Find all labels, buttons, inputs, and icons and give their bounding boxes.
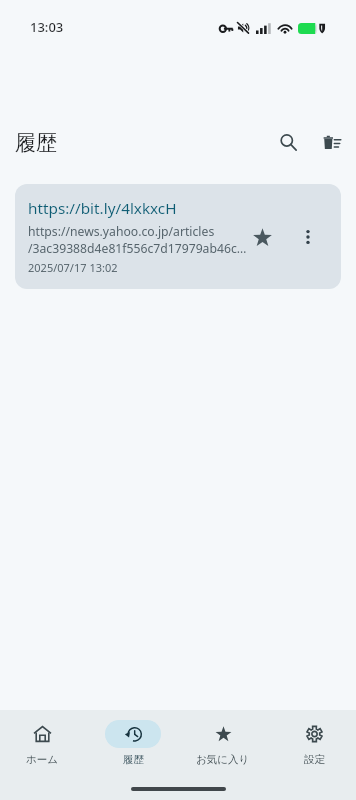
staticText: 2025/07/17 13:02 <box>28 260 118 275</box>
staticText: 設定 <box>304 753 325 766</box>
button[interactable]: お気に入り <box>188 720 258 766</box>
button[interactable]: More options <box>289 218 327 256</box>
button[interactable]: 設定 <box>279 720 349 766</box>
button[interactable]: ホーム <box>7 720 77 766</box>
staticText: 履歴 <box>15 130 57 156</box>
staticText: https://news.yahoo.co.jp/articles /3ac39… <box>28 223 247 257</box>
staticText: 履歴 <box>123 753 144 766</box>
staticText: https://bit.ly/4lxkxcH <box>28 198 177 219</box>
staticText: ホーム <box>26 753 58 766</box>
button[interactable]: 履歴 <box>98 720 168 766</box>
button[interactable]: Delete all history <box>310 120 354 164</box>
staticText: お気に入り <box>196 753 250 766</box>
button[interactable]: Favorite <box>243 218 281 256</box>
button[interactable]: https://bit.ly/4lxkxcH <box>15 184 341 289</box>
staticText: 13:03 <box>30 18 64 36</box>
button[interactable]: Search <box>266 120 310 164</box>
